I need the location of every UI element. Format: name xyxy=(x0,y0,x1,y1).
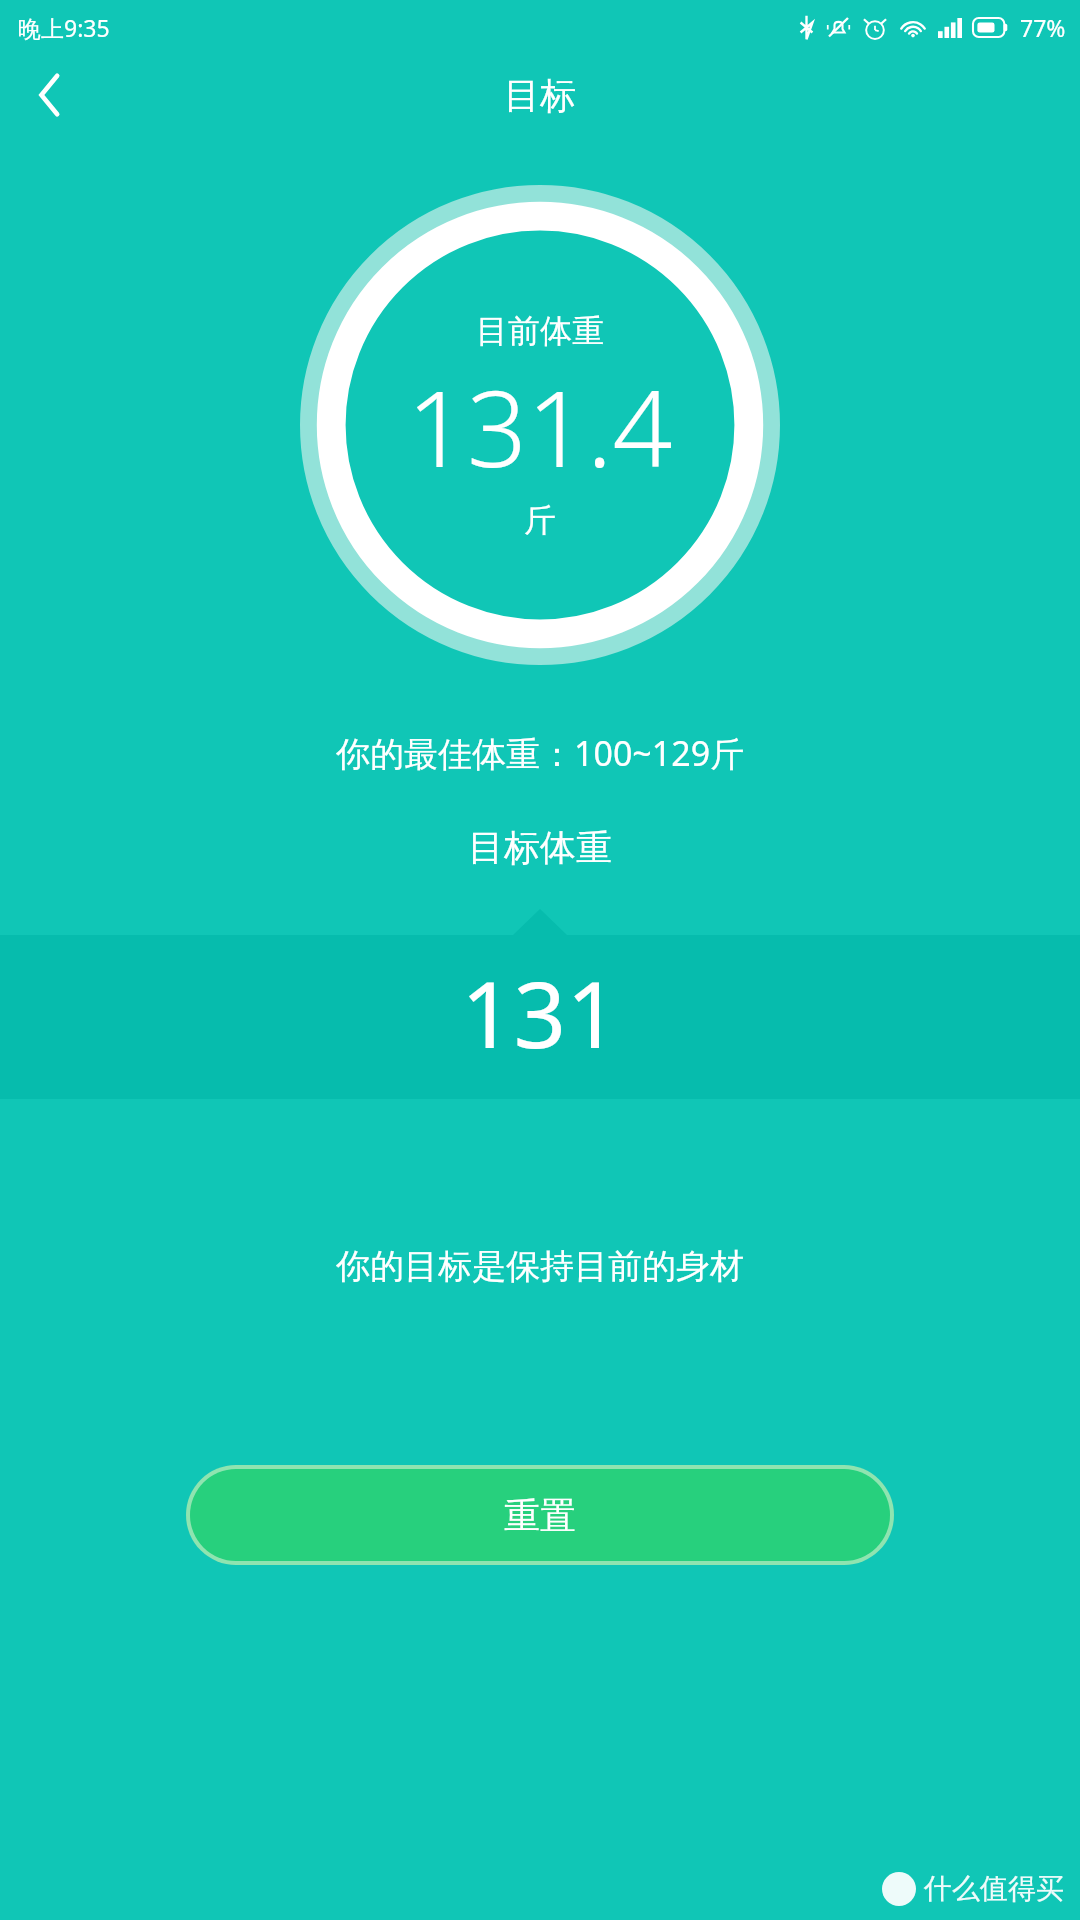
staticText: 131.4 xyxy=(407,355,673,498)
staticText: 什么值得买 xyxy=(924,1871,1064,1906)
staticText: 目前体重 xyxy=(476,311,604,351)
staticText: 重置 xyxy=(504,1493,576,1538)
staticText: 目标 xyxy=(504,73,576,118)
button[interactable]: Back xyxy=(0,45,100,145)
staticText: 晚上9:35 xyxy=(18,12,110,43)
staticText: 斤 xyxy=(524,500,556,540)
button[interactable]: 重置 xyxy=(190,1469,890,1561)
staticText: 131 xyxy=(461,950,619,1075)
staticText: 你的目标是保持目前的身材 xyxy=(336,1245,744,1288)
staticText: 目标体重 xyxy=(468,825,612,870)
staticText: 你的最佳体重：100~129斤 xyxy=(336,730,745,776)
staticText: 77% xyxy=(1020,12,1066,43)
